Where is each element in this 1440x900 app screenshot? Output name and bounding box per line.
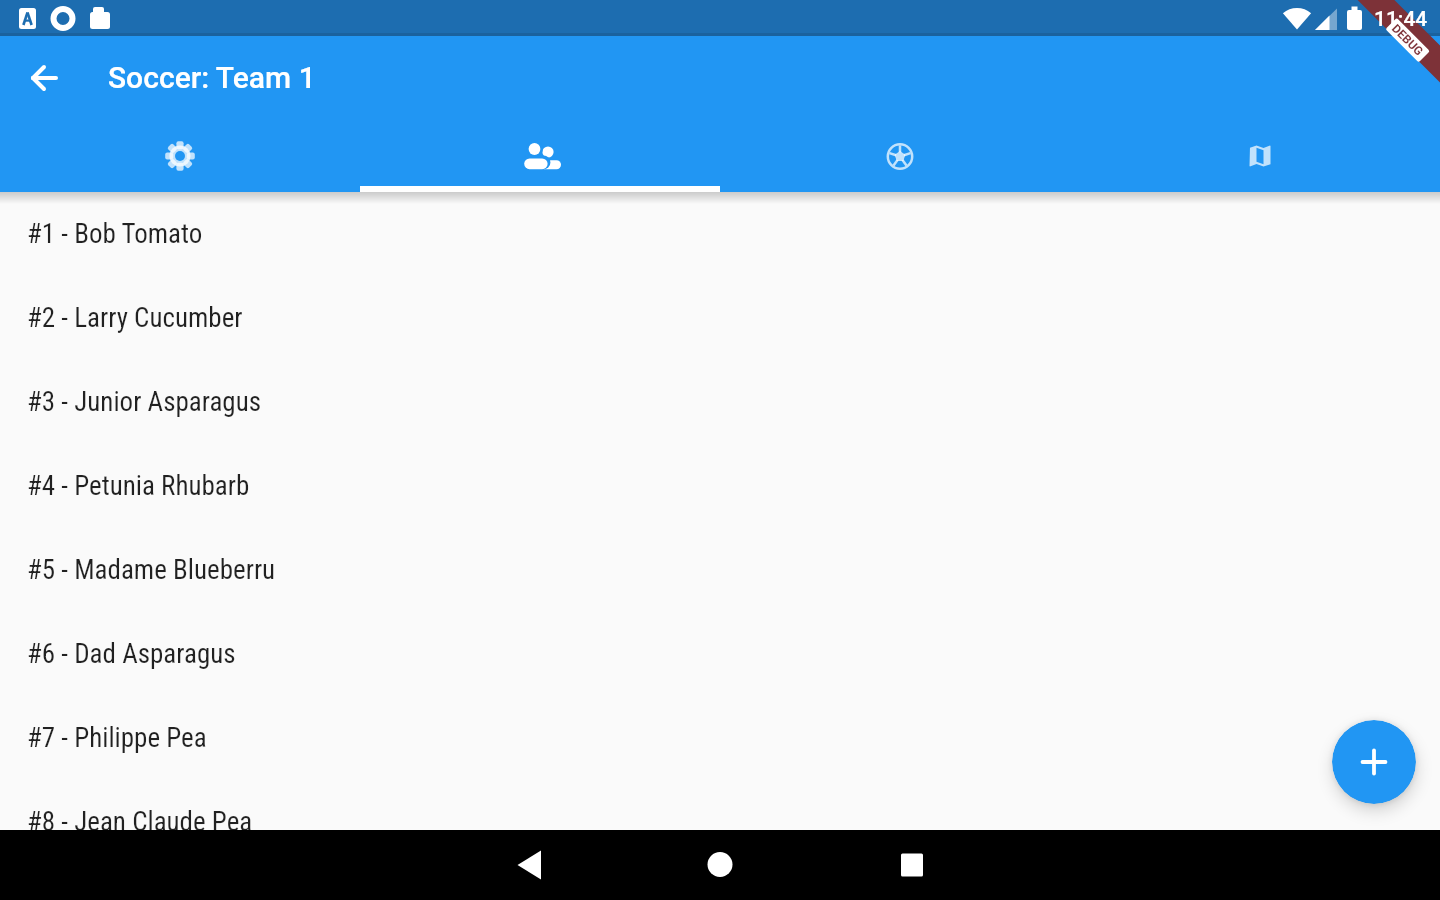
staticText: #6 - Dad Asparagus — [27, 638, 236, 670]
button[interactable] — [360, 120, 720, 192]
button[interactable] — [1080, 120, 1440, 192]
button[interactable] — [720, 120, 1080, 192]
button[interactable] — [685, 830, 755, 900]
button[interactable]: #3 - Junior Asparagus — [0, 360, 1440, 444]
staticText: #1 - Bob Tomato — [27, 218, 203, 250]
staticText: #8 - Jean Claude Pea — [27, 806, 253, 838]
button[interactable]: #1 - Bob Tomato — [0, 192, 1440, 276]
staticText: #5 - Madame Blueberru — [27, 554, 276, 586]
button[interactable] — [18, 54, 66, 102]
button[interactable]: #4 - Petunia Rhubarb — [0, 444, 1440, 528]
button[interactable]: #2 - Larry Cucumber — [0, 276, 1440, 360]
button[interactable] — [0, 120, 360, 192]
button[interactable] — [495, 830, 565, 900]
button[interactable]: #6 - Dad Asparagus — [0, 612, 1440, 696]
staticText: DEBUG — [1389, 21, 1426, 59]
button[interactable]: #5 - Madame Blueberru — [0, 528, 1440, 612]
button[interactable]: #7 - Philippe Pea — [0, 696, 1440, 780]
staticText: 11:44 — [1374, 7, 1428, 32]
staticText: #3 - Junior Asparagus — [27, 386, 262, 418]
staticText: #2 - Larry Cucumber — [27, 302, 243, 334]
button[interactable] — [877, 830, 947, 900]
button[interactable]: #8 - Jean Claude Pea — [0, 780, 1440, 864]
staticText: #4 - Petunia Rhubarb — [27, 470, 250, 502]
staticText: #7 - Philippe Pea — [27, 722, 207, 754]
button[interactable] — [1332, 720, 1416, 804]
staticText: Soccer: Team 1 — [108, 60, 316, 95]
